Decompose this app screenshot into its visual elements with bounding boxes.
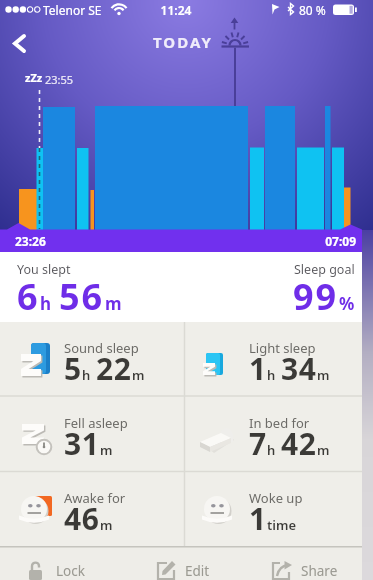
staticText: 22 bbox=[96, 348, 132, 389]
staticText: Woke up bbox=[249, 489, 303, 507]
staticText: 23:26 bbox=[15, 233, 46, 249]
staticText: 7 bbox=[249, 423, 267, 464]
staticText: 07:09 bbox=[306, 233, 356, 249]
staticText: Awake for bbox=[64, 489, 126, 507]
staticText: h bbox=[267, 366, 276, 384]
staticText: m bbox=[132, 366, 145, 384]
staticText: Share bbox=[301, 562, 338, 580]
staticText: h bbox=[40, 292, 52, 315]
button[interactable]: Woke up bbox=[185, 472, 363, 547]
staticText: zZz bbox=[25, 70, 43, 85]
staticText: h bbox=[82, 366, 91, 384]
staticText: Lock bbox=[56, 562, 85, 580]
staticText: m bbox=[317, 441, 330, 459]
staticText: In bed for bbox=[249, 414, 310, 432]
button[interactable]: Edit bbox=[155, 558, 210, 580]
staticText: 5 bbox=[64, 348, 82, 389]
staticText: 11:24 bbox=[156, 2, 196, 18]
staticText: 56 bbox=[59, 272, 105, 316]
staticText: Edit bbox=[185, 562, 210, 580]
staticText: Sleep goal bbox=[294, 261, 355, 278]
staticText: Telenor SE bbox=[43, 2, 102, 18]
staticText: 80 % bbox=[299, 2, 326, 18]
staticText: Sound sleep bbox=[64, 339, 139, 357]
staticText: Light sleep bbox=[249, 339, 316, 357]
staticText: 23:55 bbox=[45, 72, 74, 87]
button[interactable]: Fell asleep bbox=[0, 396, 185, 472]
staticText: % bbox=[339, 292, 355, 315]
button[interactable]: Light sleep bbox=[185, 322, 363, 396]
staticText: m bbox=[100, 441, 113, 459]
staticText: TODAY bbox=[153, 32, 213, 52]
staticText: 42 bbox=[281, 423, 317, 464]
staticText: 34 bbox=[281, 348, 317, 389]
button[interactable]: Sound sleep bbox=[0, 322, 185, 396]
staticText: Fell asleep bbox=[64, 414, 128, 432]
staticText: 31 bbox=[64, 423, 100, 464]
button[interactable] bbox=[6, 28, 38, 58]
button[interactable]: In bed for bbox=[185, 396, 363, 472]
staticText: m bbox=[317, 366, 330, 384]
button[interactable]: Lock bbox=[26, 558, 85, 580]
staticText: time bbox=[267, 516, 297, 534]
staticText: 1 bbox=[249, 348, 267, 389]
staticText: 46 bbox=[64, 498, 100, 539]
staticText: 99 bbox=[293, 272, 339, 316]
staticText: 1 bbox=[249, 498, 267, 539]
staticText: h bbox=[267, 441, 276, 459]
staticText: m bbox=[105, 292, 122, 315]
button[interactable]: Share bbox=[271, 558, 338, 580]
staticText: 6 bbox=[17, 272, 40, 316]
staticText: m bbox=[100, 516, 113, 534]
button[interactable]: Awake for bbox=[0, 472, 185, 547]
staticText: You slept bbox=[17, 261, 71, 278]
